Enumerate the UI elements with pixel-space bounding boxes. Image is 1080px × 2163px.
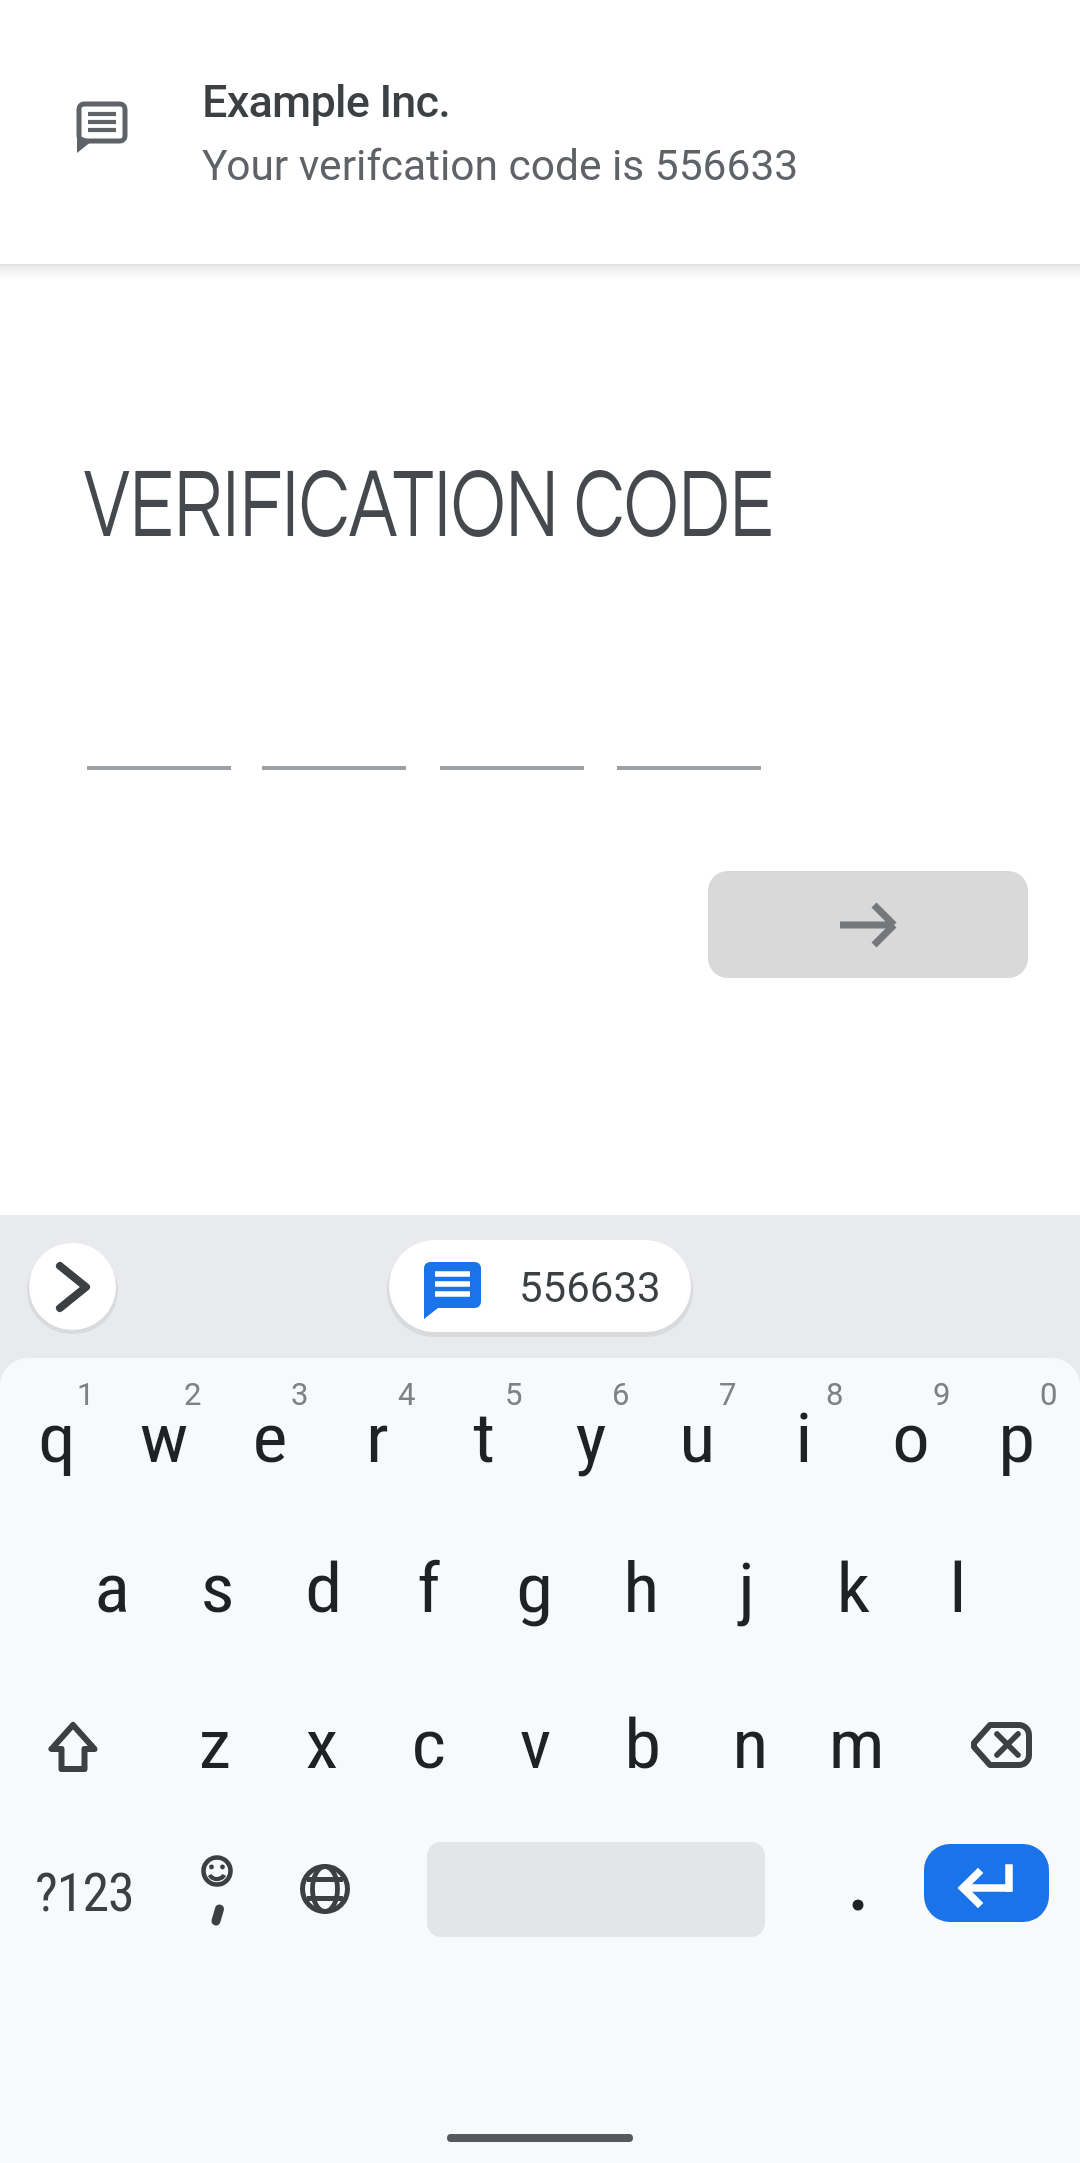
button[interactable]: h <box>587 1514 695 1664</box>
button[interactable]: d <box>270 1514 378 1664</box>
staticText: v <box>519 1705 552 1785</box>
button[interactable]: n <box>696 1670 804 1820</box>
button[interactable]: Example Inc. <box>0 0 1080 266</box>
staticText: p <box>998 1399 1036 1479</box>
button[interactable]: t <box>430 1364 538 1514</box>
button[interactable] <box>936 1670 1066 1820</box>
staticText: 9 <box>933 1376 951 1412</box>
staticText: g <box>516 1549 554 1629</box>
staticText: 6 <box>612 1376 630 1412</box>
button[interactable]: k <box>799 1514 907 1664</box>
staticText: 556633 <box>519 1263 661 1312</box>
staticText: VERIFICATION CODE <box>84 455 774 557</box>
button[interactable]: r <box>323 1364 431 1514</box>
button[interactable]: x <box>268 1670 376 1820</box>
staticText: s <box>200 1549 236 1629</box>
button[interactable] <box>803 1830 913 1980</box>
button[interactable]: w <box>110 1364 218 1514</box>
staticText: u <box>679 1399 716 1479</box>
staticText: ?123 <box>35 1861 134 1924</box>
button[interactable]: i <box>750 1364 858 1514</box>
staticText: f <box>417 1549 441 1629</box>
staticText: 8 <box>826 1376 844 1412</box>
staticText: q <box>38 1399 77 1479</box>
button[interactable]: l <box>904 1514 1012 1664</box>
staticText: Your verifcation code is 556633 <box>202 141 799 191</box>
staticText: y <box>575 1399 607 1479</box>
staticText: 5 <box>505 1376 523 1412</box>
staticText: c <box>411 1705 447 1785</box>
button[interactable]: v <box>482 1670 590 1820</box>
button[interactable]: e <box>216 1364 324 1514</box>
staticText: n <box>732 1705 769 1785</box>
staticText: i <box>795 1399 813 1479</box>
staticText: Example Inc. <box>202 75 451 128</box>
button[interactable]: u <box>643 1364 751 1514</box>
button[interactable] <box>270 1814 380 1964</box>
button[interactable] <box>162 1815 272 1971</box>
button[interactable] <box>29 1243 116 1330</box>
button[interactable] <box>8 1672 138 1822</box>
button[interactable]: q <box>3 1364 111 1514</box>
button[interactable] <box>924 1844 1049 1922</box>
staticText: w <box>140 1399 189 1479</box>
staticText: a <box>94 1549 131 1629</box>
staticText: m <box>828 1705 886 1785</box>
button[interactable]: a <box>58 1514 166 1664</box>
staticText: t <box>473 1399 496 1479</box>
button[interactable]: z <box>161 1670 269 1820</box>
staticText: 4 <box>398 1376 416 1412</box>
button[interactable]: ?123 <box>14 1817 154 1967</box>
button[interactable]: j <box>693 1514 801 1664</box>
staticText: r <box>366 1399 389 1479</box>
button[interactable]: g <box>481 1514 589 1664</box>
staticText: 2 <box>184 1376 202 1412</box>
staticText: 0 <box>1040 1376 1058 1412</box>
button[interactable]: 556633 <box>389 1240 691 1332</box>
button[interactable]: o <box>857 1364 965 1514</box>
button[interactable]: b <box>589 1670 697 1820</box>
staticText: x <box>305 1705 338 1785</box>
button[interactable]: s <box>164 1514 272 1664</box>
staticText: d <box>305 1549 343 1629</box>
button[interactable]: p <box>963 1364 1071 1514</box>
staticText: b <box>624 1705 662 1785</box>
button[interactable]: m <box>803 1670 911 1820</box>
staticText: h <box>623 1549 660 1629</box>
button[interactable]: y <box>537 1364 645 1514</box>
staticText: 1 <box>77 1376 95 1412</box>
staticText: 7 <box>719 1376 737 1412</box>
staticText: k <box>836 1549 871 1629</box>
staticText: l <box>949 1549 967 1629</box>
button[interactable]: c <box>375 1670 483 1820</box>
staticText: 3 <box>291 1376 309 1412</box>
button[interactable] <box>708 871 1028 978</box>
staticText: e <box>252 1399 288 1479</box>
staticText: z <box>198 1705 231 1785</box>
button[interactable]: f <box>375 1514 483 1664</box>
staticText: j <box>738 1549 756 1629</box>
staticText: o <box>892 1399 931 1479</box>
